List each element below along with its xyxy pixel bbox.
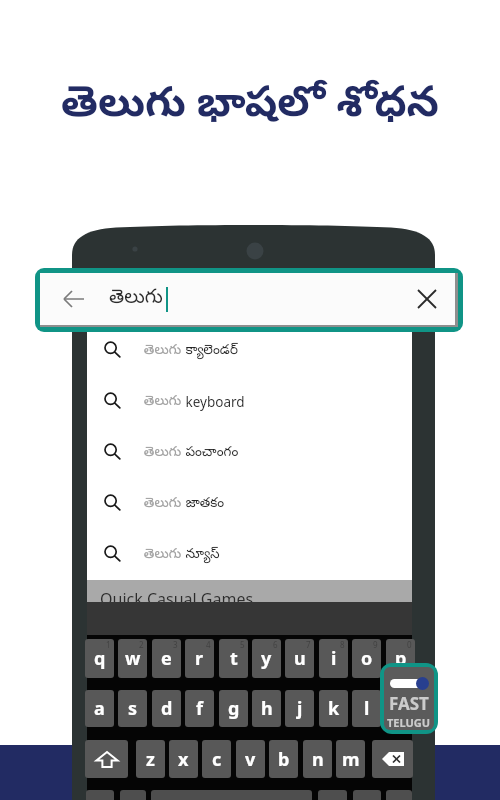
staticText: 5 [240, 639, 245, 650]
staticText: 3 [173, 639, 178, 650]
button[interactable]: c [202, 740, 231, 778]
staticText: తెలుగు [144, 495, 182, 513]
staticText: x [178, 747, 189, 772]
staticText: q [94, 646, 106, 671]
button[interactable]: 8 [319, 639, 348, 678]
button[interactable]: 5 [219, 639, 248, 678]
button[interactable]: తెలుగు [87, 376, 412, 427]
staticText: తెలుగు [144, 546, 182, 564]
button[interactable] [86, 790, 114, 800]
staticText: k [328, 696, 340, 721]
staticText: m [342, 747, 360, 772]
other: Backspace [380, 746, 406, 772]
button[interactable]: Backspace [372, 740, 413, 778]
staticText: keyboard [182, 393, 245, 411]
staticText: తెలుగు [144, 393, 182, 411]
staticText: r [195, 646, 204, 671]
button[interactable]: 3 [152, 639, 181, 678]
button[interactable] [318, 790, 347, 800]
staticText: జాతకం [182, 493, 225, 514]
button[interactable]: తెలుగు [87, 478, 412, 529]
staticText: s [128, 696, 138, 721]
staticText: తెలుగు భాషలో శోధన [61, 71, 439, 136]
button[interactable]: FAST [384, 667, 434, 730]
button[interactable] [386, 790, 412, 800]
staticText: j [297, 696, 303, 721]
staticText: 7 [306, 639, 311, 650]
button[interactable]: j [285, 690, 314, 727]
staticText: i [331, 646, 337, 671]
staticText: క్యాలెండర్ [182, 340, 238, 361]
button[interactable]: 1 [85, 639, 114, 678]
staticText: b [278, 747, 290, 772]
staticText: w [125, 646, 141, 671]
button[interactable]: తెలుగు [87, 529, 412, 580]
staticText: FAST [389, 692, 429, 715]
staticText: పంచాంగం [182, 442, 239, 463]
button[interactable]: m [336, 740, 365, 778]
staticText: n [312, 747, 324, 772]
staticText: c [212, 747, 222, 772]
button[interactable]: a [85, 690, 114, 727]
staticText: h [261, 696, 273, 721]
staticText: d [161, 696, 173, 721]
button[interactable]: k [319, 690, 348, 727]
button[interactable]: s [118, 690, 147, 727]
staticText: v [245, 747, 256, 772]
staticText: 6 [273, 639, 278, 650]
button[interactable]: 6 [252, 639, 281, 678]
button[interactable]: Back [40, 273, 458, 327]
staticText: 4 [206, 639, 211, 650]
button[interactable]: తెలుగు [87, 427, 412, 478]
button[interactable] [353, 790, 381, 800]
staticText: y [261, 646, 272, 671]
staticText: తెలుగు [144, 444, 182, 462]
staticText: o [361, 646, 373, 671]
button[interactable]: 0 [386, 639, 415, 678]
staticText: e [161, 646, 172, 671]
staticText: Quick Casual Games [100, 588, 254, 610]
staticText: తెలుగు [109, 286, 163, 312]
staticText: 0 [407, 639, 412, 650]
button[interactable]: d [152, 690, 181, 727]
button[interactable]: Shift [85, 740, 128, 778]
staticText: 8 [340, 639, 345, 650]
button[interactable]: x [169, 740, 198, 778]
button[interactable]: 4 [185, 639, 214, 678]
staticText: g [228, 696, 240, 721]
button[interactable]: l [352, 690, 381, 727]
staticText: z [146, 747, 155, 772]
button[interactable]: f [185, 690, 214, 727]
staticText: 1 [106, 639, 111, 650]
staticText: 9 [373, 639, 378, 650]
staticText: తెలుగు [144, 342, 182, 360]
staticText: l [364, 696, 370, 721]
button[interactable]: 9 [352, 639, 381, 678]
button[interactable]: తెలుగు [87, 325, 412, 376]
button[interactable]: v [236, 740, 265, 778]
staticText: u [294, 646, 306, 671]
staticText: p [395, 646, 407, 671]
staticText: t [230, 646, 238, 671]
other: Back [61, 286, 87, 312]
button[interactable]: 7 [285, 639, 314, 678]
button[interactable]: z [136, 740, 165, 778]
staticText: a [94, 696, 105, 721]
button[interactable] [120, 790, 146, 800]
button[interactable]: h [252, 690, 281, 727]
staticText: f [196, 696, 203, 721]
button[interactable]: g [219, 690, 248, 727]
button[interactable]: 2 [118, 639, 147, 678]
other: Clear [415, 287, 439, 311]
staticText: న్యూస్ [182, 544, 220, 565]
button[interactable]: b [269, 740, 298, 778]
button[interactable]: n [303, 740, 332, 778]
other: Shift [96, 751, 118, 768]
staticText: 2 [139, 639, 144, 650]
staticText: TELUGU [387, 715, 431, 730]
